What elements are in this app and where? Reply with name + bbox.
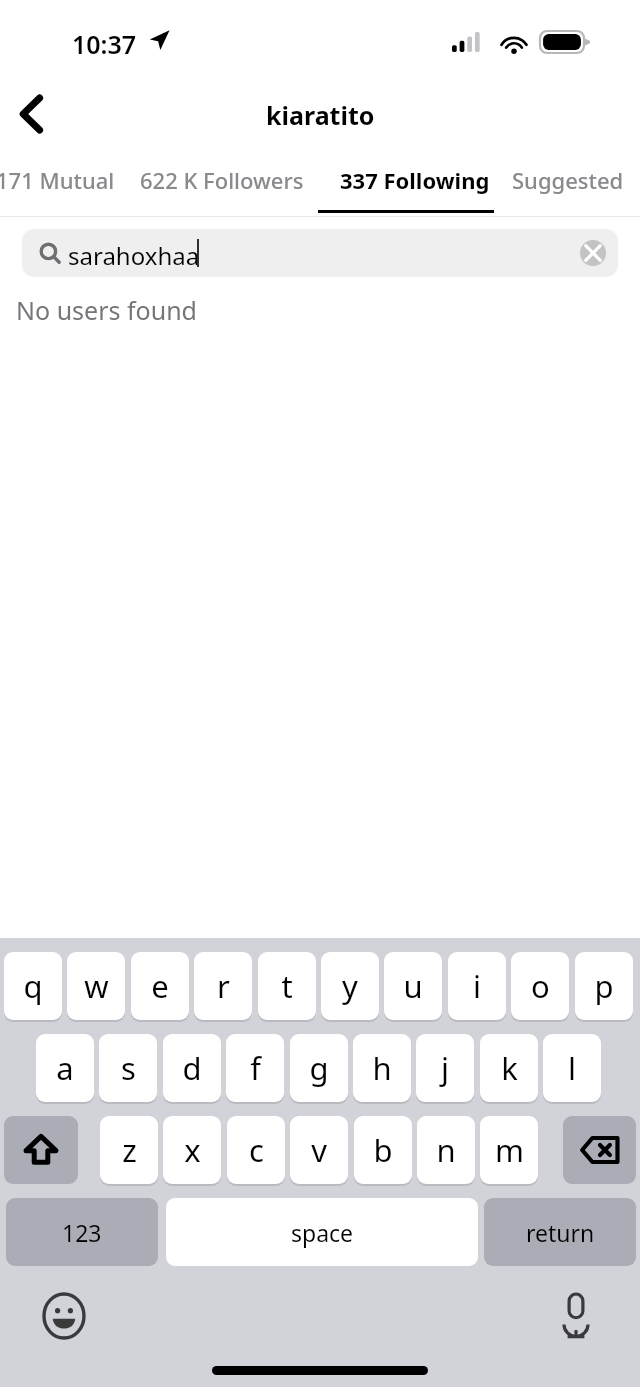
button[interactable]: 123 <box>6 1198 158 1266</box>
button[interactable]: j <box>416 1034 474 1102</box>
button[interactable]: x <box>163 1116 221 1184</box>
button[interactable]: r <box>194 952 252 1020</box>
button[interactable]: 337 Following <box>340 165 490 195</box>
staticText: y <box>342 965 358 1007</box>
staticText: i <box>473 965 481 1007</box>
staticText: h <box>372 1047 392 1089</box>
staticText: kiaratito <box>266 98 375 132</box>
button[interactable]: z <box>100 1116 158 1184</box>
button[interactable]: y <box>321 952 379 1020</box>
button[interactable]: g <box>290 1034 348 1102</box>
button[interactable]: b <box>354 1116 412 1184</box>
button[interactable]: l <box>543 1034 601 1102</box>
staticText: a <box>56 1047 74 1089</box>
staticText: t <box>281 965 293 1007</box>
staticText: sarahoxhaa <box>68 239 200 272</box>
button[interactable]: h <box>353 1034 411 1102</box>
button[interactable]: sarahoxhaa <box>22 229 618 277</box>
staticText: return <box>526 1217 595 1248</box>
staticText: m <box>495 1129 524 1171</box>
button[interactable]: a <box>36 1034 94 1102</box>
staticText: w <box>84 965 109 1007</box>
button[interactable]: f <box>226 1034 284 1102</box>
staticText: b <box>373 1129 393 1171</box>
button[interactable]: s <box>99 1034 157 1102</box>
staticText: q <box>23 965 43 1007</box>
button[interactable]: Suggested <box>512 165 624 195</box>
button[interactable]: k <box>480 1034 538 1102</box>
staticText: 123 <box>62 1217 102 1248</box>
staticText: k <box>501 1047 518 1089</box>
staticText: u <box>403 965 423 1007</box>
button[interactable]: q <box>4 952 62 1020</box>
button[interactable]: p <box>575 952 633 1020</box>
staticText: c <box>249 1129 264 1171</box>
button[interactable]: i <box>448 952 506 1020</box>
button[interactable]: Clear text <box>578 238 608 268</box>
staticText: p <box>594 965 614 1007</box>
button[interactable]: return <box>484 1198 636 1266</box>
button[interactable]: d <box>163 1034 221 1102</box>
staticText: x <box>184 1129 201 1171</box>
staticText: n <box>436 1129 456 1171</box>
staticText: o <box>531 965 550 1007</box>
staticText: z <box>122 1129 137 1171</box>
staticText: e <box>151 965 169 1007</box>
button[interactable]: c <box>227 1116 285 1184</box>
button[interactable]: v <box>290 1116 348 1184</box>
staticText: r <box>217 965 230 1007</box>
button[interactable]: t <box>258 952 316 1020</box>
staticText: s <box>121 1047 136 1089</box>
button[interactable]: 171 Mutual <box>0 165 115 195</box>
button[interactable]: space <box>166 1198 478 1266</box>
staticText: l <box>568 1047 576 1089</box>
staticText: 10:37 <box>72 27 137 61</box>
staticText: j <box>441 1047 449 1089</box>
button[interactable]: Emoji <box>36 1288 92 1344</box>
button[interactable]: o <box>511 952 569 1020</box>
button[interactable]: Back <box>0 82 64 146</box>
button[interactable]: u <box>384 952 442 1020</box>
staticText: v <box>311 1129 327 1171</box>
button[interactable]: 622 K Followers <box>140 165 304 195</box>
staticText: g <box>309 1047 329 1089</box>
staticText: f <box>250 1047 261 1089</box>
button[interactable]: e <box>131 952 189 1020</box>
button[interactable]: n <box>417 1116 475 1184</box>
button[interactable]: m <box>480 1116 538 1184</box>
staticText: No users found <box>16 293 197 327</box>
staticText: d <box>182 1047 202 1089</box>
button[interactable]: Delete <box>563 1116 636 1184</box>
staticText: space <box>291 1217 354 1248</box>
button[interactable]: Dictation <box>548 1288 604 1344</box>
button[interactable]: w <box>67 952 125 1020</box>
button[interactable]: Shift <box>4 1116 78 1184</box>
